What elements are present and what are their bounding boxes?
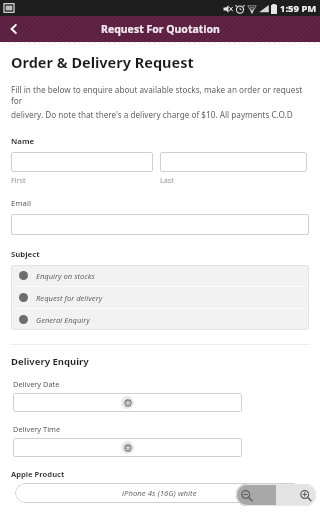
staticText: 1:59 PM bbox=[280, 2, 317, 15]
button[interactable]: Enquiry on stocks bbox=[11, 265, 309, 286]
staticText: delivery. Do note that there's a deliver… bbox=[11, 109, 293, 120]
staticText: Fill in the below to enquire about avail… bbox=[11, 84, 312, 106]
staticText: Request for delivery bbox=[36, 293, 103, 303]
staticText: Delivery Time bbox=[13, 424, 61, 434]
staticText: Request For Quotation bbox=[101, 22, 220, 36]
button[interactable] bbox=[11, 214, 309, 235]
button[interactable]: Back bbox=[0, 16, 28, 42]
button[interactable]: Pick value bbox=[13, 438, 242, 457]
staticText: iPhone 4s (16G) white bbox=[122, 488, 197, 499]
staticText: Subject bbox=[11, 249, 40, 260]
staticText: Delivery Enquiry bbox=[11, 355, 89, 368]
staticText: Email bbox=[11, 198, 32, 209]
staticText: First bbox=[11, 175, 26, 185]
staticText: Name bbox=[11, 136, 35, 147]
staticText: Enquiry on stocks bbox=[36, 271, 95, 281]
staticText: Last bbox=[160, 175, 174, 185]
staticText: General Enquiry bbox=[36, 315, 90, 325]
staticText: Order & Delivery Request bbox=[11, 52, 194, 72]
button[interactable] bbox=[11, 152, 153, 172]
button[interactable]: Request for delivery bbox=[11, 287, 309, 308]
staticText: Delivery Date bbox=[13, 379, 60, 389]
staticText: Apple Product bbox=[11, 469, 65, 479]
button[interactable] bbox=[160, 152, 307, 172]
button[interactable]: Pick value bbox=[13, 393, 242, 412]
button[interactable]: General Enquiry bbox=[11, 309, 309, 330]
button[interactable]: Zoom out bbox=[236, 484, 276, 506]
button[interactable]: Zoom in bbox=[276, 484, 316, 506]
button[interactable]: iPhone 4s (16G) white bbox=[15, 483, 303, 503]
